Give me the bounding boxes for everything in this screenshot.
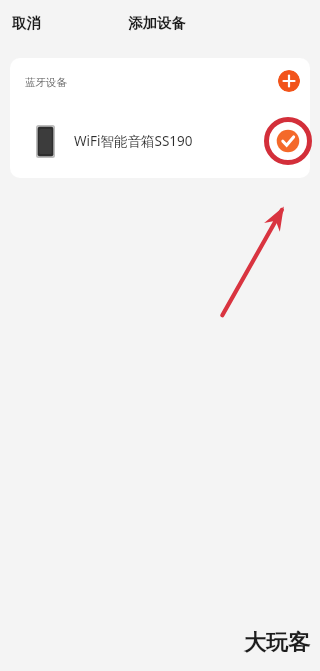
button[interactable]: WiFi智能音箱SS190 <box>10 104 310 178</box>
staticText: 添加设备 <box>128 14 186 32</box>
staticText: 蓝牙设备 <box>25 76 67 89</box>
staticText: 取消 <box>12 14 41 32</box>
button[interactable]: 已选择 <box>264 117 312 165</box>
button[interactable]: 取消 <box>6 8 47 38</box>
button[interactable]: 添加 <box>278 70 300 92</box>
staticText: 大玩客 <box>244 629 310 657</box>
staticText: WiFi智能音箱SS190 <box>74 132 193 150</box>
